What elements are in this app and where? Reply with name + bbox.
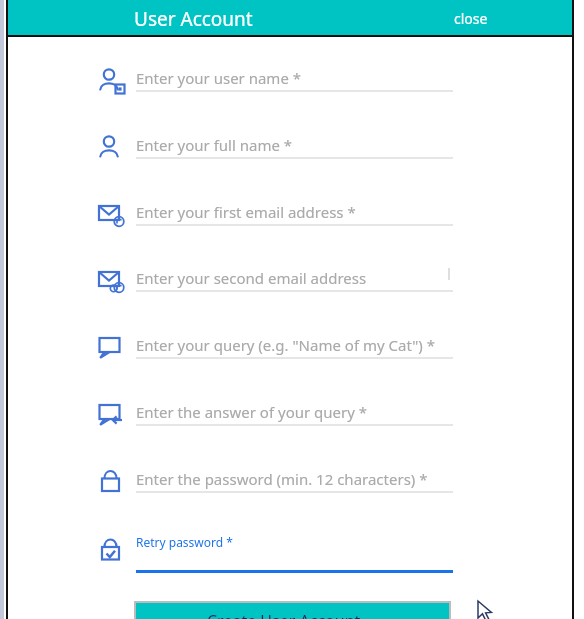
- other: Answer: [96, 399, 128, 431]
- staticText: Create User Account: [207, 610, 361, 619]
- button[interactable]: User name: [92, 57, 458, 113]
- other: Password: [96, 466, 128, 498]
- staticText: Enter the password (min. 12 characters) …: [136, 469, 428, 489]
- other: Full name: [96, 132, 128, 164]
- staticText: Retry password *: [136, 534, 233, 550]
- button[interactable]: Password: [92, 458, 458, 514]
- staticText: User Account: [134, 6, 253, 32]
- button[interactable]: Retry password: [92, 525, 458, 581]
- button[interactable]: Full name: [92, 124, 458, 180]
- other: User name: [96, 65, 128, 97]
- staticText: Enter your query (e.g. "Name of my Cat")…: [136, 335, 435, 355]
- button[interactable]: Second email: [92, 257, 458, 313]
- staticText: Enter your second email address: [136, 268, 367, 288]
- other: Second email: [96, 265, 128, 297]
- staticText: close: [454, 9, 488, 28]
- button[interactable]: First email: [92, 191, 458, 247]
- other: First email: [96, 199, 128, 231]
- staticText: Enter the answer of your query *: [136, 402, 368, 422]
- button[interactable]: Answer: [92, 391, 458, 447]
- staticText: Enter your first email address *: [136, 202, 356, 222]
- other: Query: [96, 332, 128, 364]
- staticText: Enter your full name *: [136, 135, 293, 155]
- button[interactable]: Query: [92, 324, 458, 380]
- button[interactable]: [134, 601, 451, 619]
- button[interactable]: close: [448, 3, 500, 32]
- other: Retry password: [96, 533, 128, 565]
- staticText: Enter your user name *: [136, 68, 302, 88]
